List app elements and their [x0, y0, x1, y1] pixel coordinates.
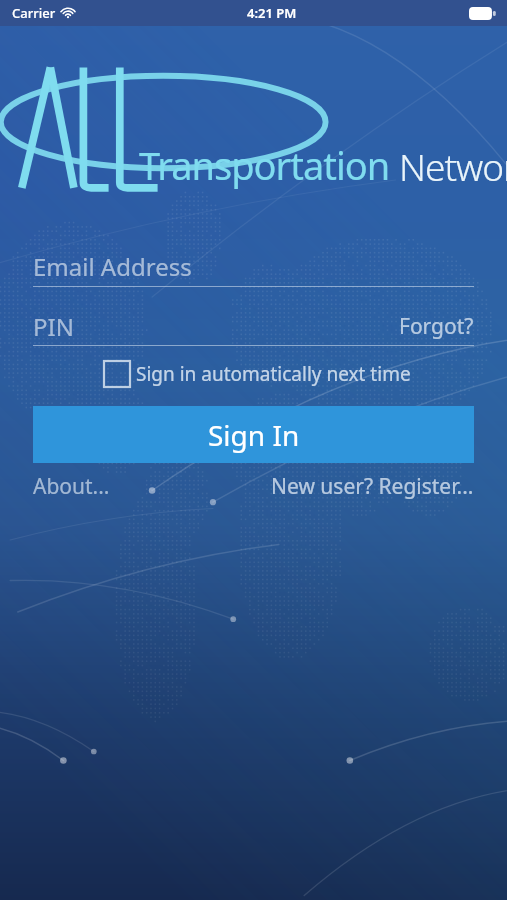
button[interactable]: New user? Register... [271, 470, 474, 502]
staticText: About... [33, 472, 110, 501]
button[interactable]: Email Address [33, 246, 474, 286]
button[interactable]: Sign In [33, 406, 474, 463]
staticText: Carrier [12, 4, 56, 22]
button[interactable]: About... [33, 470, 110, 502]
staticText: 4:21 PM [247, 4, 297, 22]
staticText: Forgot? [399, 312, 474, 341]
button[interactable]: PIN [33, 307, 399, 345]
staticText: Transportation [139, 139, 390, 191]
button[interactable]: Sign in automatically next time [104, 359, 411, 389]
staticText: Email Address [33, 250, 192, 283]
other: Battery full [469, 7, 497, 20]
staticText: New user? Register... [271, 472, 474, 501]
button[interactable]: Forgot? [399, 307, 474, 345]
staticText: PIN [33, 310, 74, 343]
other: Wi-Fi signal [61, 6, 75, 20]
staticText: Sign In [208, 416, 300, 454]
staticText: Network [399, 141, 507, 191]
staticText: Sign in automatically next time [136, 361, 411, 387]
